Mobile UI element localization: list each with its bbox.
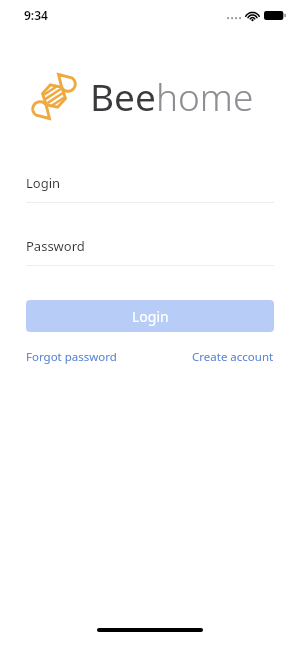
staticText: Login — [132, 307, 169, 326]
staticText: Forgot password — [26, 349, 117, 365]
button[interactable]: Password — [0, 237, 300, 266]
button[interactable]: Forgot password — [26, 346, 117, 368]
staticText: Login — [26, 174, 61, 192]
staticText: Bee — [90, 71, 156, 121]
staticText: Create account — [192, 349, 274, 365]
staticText: home — [156, 71, 254, 121]
button[interactable]: Create account — [192, 346, 274, 368]
staticText: 9:34 — [24, 7, 48, 23]
other: Beehome logo — [30, 71, 80, 121]
staticText: Password — [26, 237, 85, 255]
button[interactable]: Login — [26, 300, 274, 332]
button[interactable]: Login — [0, 174, 300, 203]
